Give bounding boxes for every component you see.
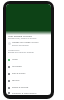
button[interactable]: People & Sharing [6, 84, 51, 91]
staticText: Review your security settings [8, 51, 34, 54]
staticText: Payments & Subscriptions [12, 92, 37, 95]
staticText: personal info, privacy & security [8, 37, 37, 40]
button[interactable]: My Details [6, 63, 51, 70]
button[interactable] [6, 4, 51, 35]
staticText: Manage your Google Account [12, 41, 39, 44]
staticText: privacy and security [12, 44, 29, 46]
staticText: SUGGESTIONS [8, 49, 20, 51]
button[interactable]: Payments & Subscriptions [6, 91, 51, 95]
button[interactable]: Data & Privacy [6, 70, 51, 77]
staticText: Data & Privacy [12, 72, 26, 75]
button[interactable]: Security [6, 77, 51, 84]
staticText: My Details [12, 65, 22, 68]
button[interactable]: Home [6, 56, 51, 63]
staticText: Your Google Account [8, 34, 32, 37]
staticText: Home [12, 58, 18, 61]
staticText: People & Sharing [12, 86, 29, 89]
staticText: Security [12, 79, 20, 82]
button[interactable]: Manage your Google Account [8, 41, 51, 46]
